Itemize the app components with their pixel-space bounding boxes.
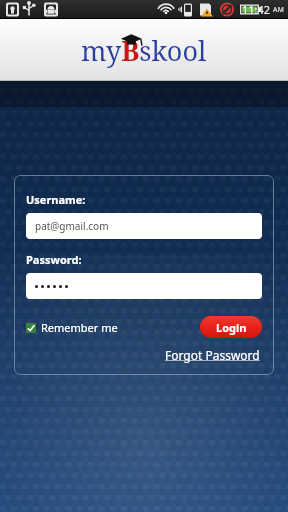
- button[interactable]: Forgot Password: [163, 345, 262, 365]
- button[interactable]: Remember me: [26, 318, 118, 337]
- staticText: Username:: [26, 192, 86, 207]
- staticText: Password:: [26, 252, 82, 267]
- button[interactable]: pat@gmail.com: [26, 213, 262, 239]
- button[interactable]: [26, 273, 262, 299]
- staticText: myBskool: [81, 32, 207, 69]
- staticText: Forgot Password: [165, 347, 260, 363]
- button[interactable]: Login: [200, 316, 262, 338]
- staticText: Remember me: [41, 320, 118, 335]
- staticText: pat@gmail.com: [35, 219, 109, 233]
- staticText: 11:42: [242, 2, 271, 17]
- staticText: AM: [273, 5, 284, 15]
- staticText: Login: [216, 320, 247, 335]
